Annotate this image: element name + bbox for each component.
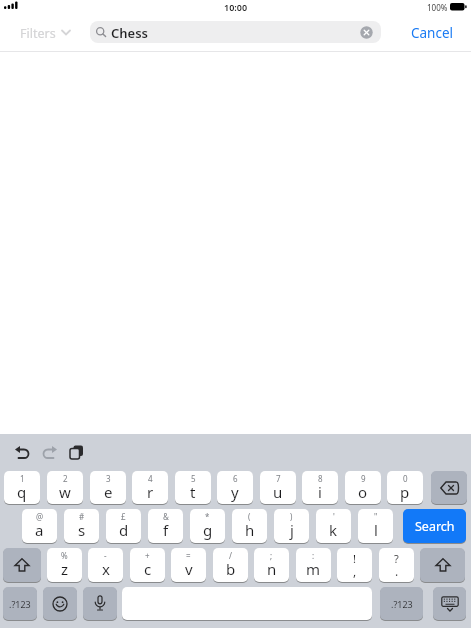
- button[interactable]: [433, 587, 466, 620]
- staticText: 9: [361, 473, 366, 484]
- button[interactable]: 5: [175, 471, 211, 504]
- staticText: j: [290, 520, 294, 540]
- button[interactable]: -: [88, 548, 123, 582]
- button[interactable]: 1: [4, 471, 40, 504]
- staticText: m: [306, 559, 321, 579]
- staticText: ': [333, 511, 335, 522]
- staticText: t: [190, 482, 196, 502]
- button[interactable]: ;: [254, 548, 289, 582]
- staticText: @: [36, 511, 44, 522]
- button[interactable]: 7: [260, 471, 296, 504]
- staticText: (: [248, 511, 251, 522]
- staticText: *: [205, 511, 210, 522]
- staticText: u: [273, 482, 283, 502]
- staticText: p: [400, 482, 410, 502]
- staticText: -: [104, 550, 107, 561]
- staticText: k: [329, 520, 338, 540]
- staticText: l: [374, 520, 378, 540]
- staticText: #: [79, 511, 85, 522]
- button[interactable]: Chess: [90, 21, 381, 43]
- button[interactable]: [42, 446, 57, 460]
- button[interactable]: [431, 471, 467, 504]
- staticText: ): [290, 511, 293, 522]
- staticText: 6: [233, 473, 238, 484]
- staticText: £: [121, 511, 126, 522]
- button[interactable]: ': [316, 509, 351, 543]
- button[interactable]: [122, 587, 372, 620]
- staticText: 5: [191, 473, 196, 484]
- staticText: o: [358, 482, 368, 502]
- button[interactable]: 0: [387, 471, 423, 504]
- staticText: .?123: [391, 598, 413, 610]
- button[interactable]: £: [106, 509, 141, 543]
- button[interactable]: =: [171, 548, 206, 582]
- staticText: a: [35, 520, 44, 540]
- button[interactable]: &: [148, 509, 183, 543]
- staticText: ,: [353, 563, 357, 579]
- button[interactable]: Cancel: [411, 24, 459, 42]
- button[interactable]: 2: [47, 471, 83, 504]
- staticText: b: [226, 559, 236, 579]
- staticText: &: [163, 511, 169, 522]
- staticText: +: [145, 550, 150, 561]
- staticText: f: [163, 520, 169, 540]
- button[interactable]: Search: [403, 509, 466, 543]
- staticText: 4: [148, 473, 153, 484]
- staticText: e: [104, 482, 113, 502]
- button[interactable]: 9: [345, 471, 381, 504]
- button[interactable]: ): [274, 509, 309, 543]
- staticText: r: [147, 482, 154, 502]
- button[interactable]: /: [213, 548, 248, 582]
- button[interactable]: 3: [90, 471, 126, 504]
- button[interactable]: :: [296, 548, 331, 582]
- staticText: =: [186, 550, 191, 561]
- staticText: x: [102, 559, 110, 579]
- button[interactable]: !: [337, 548, 372, 582]
- button[interactable]: [15, 446, 30, 460]
- staticText: !: [353, 551, 356, 566]
- button[interactable]: ?: [379, 548, 414, 582]
- staticText: h: [245, 520, 255, 540]
- staticText: ?: [394, 551, 399, 566]
- staticText: 3: [106, 473, 111, 484]
- button[interactable]: Filters: [18, 24, 78, 42]
- button[interactable]: [3, 548, 41, 582]
- staticText: :: [312, 550, 315, 561]
- staticText: %: [61, 550, 68, 561]
- button[interactable]: #: [64, 509, 99, 543]
- staticText: v: [185, 559, 193, 579]
- button[interactable]: +: [130, 548, 165, 582]
- staticText: Search: [415, 518, 455, 535]
- staticText: g: [203, 520, 213, 540]
- staticText: .: [395, 563, 399, 579]
- button[interactable]: .?123: [380, 587, 423, 620]
- button[interactable]: %: [47, 548, 82, 582]
- staticText: Cancel: [411, 24, 454, 42]
- staticText: 10:00: [224, 1, 248, 13]
- staticText: c: [144, 559, 152, 579]
- staticText: Filters: [20, 25, 56, 42]
- staticText: .?123: [9, 598, 31, 610]
- staticText: 2: [63, 473, 68, 484]
- button[interactable]: (: [232, 509, 267, 543]
- button[interactable]: 4: [132, 471, 168, 504]
- button[interactable]: 6: [217, 471, 253, 504]
- button[interactable]: @: [22, 509, 57, 543]
- button[interactable]: [420, 548, 465, 582]
- button[interactable]: ": [358, 509, 393, 543]
- staticText: 0: [403, 473, 408, 484]
- staticText: 1: [20, 473, 25, 484]
- staticText: d: [119, 520, 129, 540]
- button[interactable]: *: [190, 509, 225, 543]
- button[interactable]: [83, 587, 117, 620]
- staticText: /: [229, 550, 232, 561]
- staticText: 7: [276, 473, 281, 484]
- button[interactable]: [43, 587, 77, 620]
- button[interactable]: 8: [302, 471, 338, 504]
- staticText: 8: [318, 473, 323, 484]
- button[interactable]: .?123: [3, 587, 37, 620]
- staticText: z: [61, 559, 69, 579]
- button[interactable]: [69, 445, 85, 460]
- staticText: q: [17, 482, 27, 502]
- staticText: i: [318, 482, 322, 502]
